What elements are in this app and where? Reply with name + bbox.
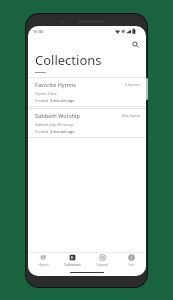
staticText: Sabbath Worship bbox=[35, 112, 80, 120]
staticText: 2 hymns bbox=[124, 82, 140, 87]
button[interactable]: Info bbox=[117, 252, 145, 269]
staticText: 2 minutes ago bbox=[50, 129, 75, 134]
staticText: Support bbox=[96, 263, 109, 267]
staticText: Hymns I love bbox=[35, 91, 57, 96]
button[interactable]: Search bbox=[130, 39, 141, 50]
staticText: Info bbox=[128, 263, 135, 267]
staticText: Hymns bbox=[38, 263, 49, 267]
staticText: One hymn bbox=[121, 113, 140, 118]
button[interactable]: Support bbox=[88, 252, 116, 269]
button[interactable]: Collections bbox=[58, 252, 86, 269]
staticText: Created bbox=[35, 98, 50, 103]
staticText: Favorite Hymns bbox=[35, 81, 77, 89]
staticText: Sabbath July 4th songs bbox=[35, 122, 74, 127]
staticText: Created bbox=[35, 129, 50, 134]
staticText: Collections bbox=[64, 263, 81, 267]
button[interactable]: Favorite Hymns bbox=[28, 76, 146, 107]
staticText: 3 minutes ago bbox=[50, 98, 75, 103]
staticText: Collections bbox=[35, 51, 102, 69]
staticText: 10:00 bbox=[33, 29, 44, 34]
button[interactable]: Hymns bbox=[29, 252, 57, 269]
button[interactable]: Sabbath Worship bbox=[28, 107, 146, 138]
